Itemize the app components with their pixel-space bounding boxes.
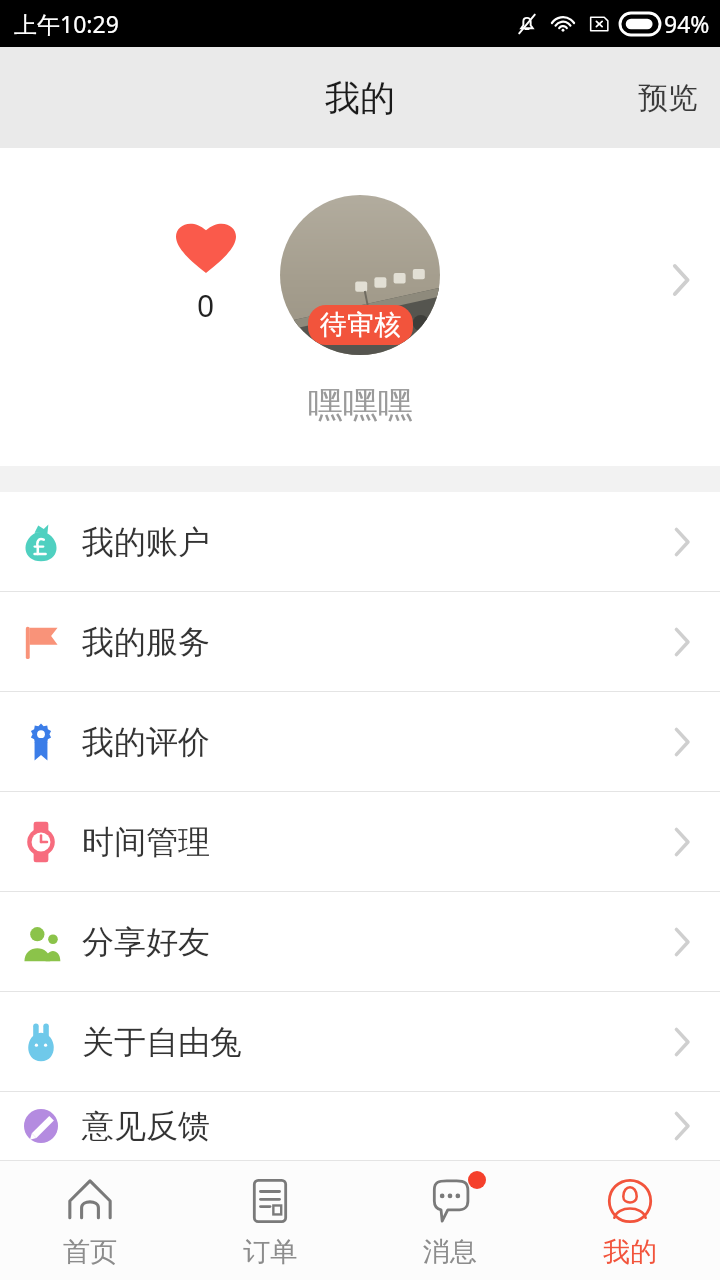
button[interactable]: 我的评价: [0, 692, 720, 791]
staticText: 时间管理: [82, 822, 672, 862]
staticText: 首页: [63, 1235, 117, 1269]
staticText: 我的账户: [82, 522, 672, 562]
button[interactable]: 我的服务: [0, 592, 720, 691]
button[interactable]: 0: [0, 148, 720, 466]
staticText: 我的服务: [82, 622, 672, 662]
staticText: 预览: [638, 79, 698, 117]
button[interactable]: 分享好友: [0, 892, 720, 991]
button[interactable]: 消息: [360, 1161, 540, 1280]
button[interactable]: 预览: [616, 61, 720, 135]
button[interactable]: 我的账户: [0, 492, 720, 591]
button[interactable]: 订单: [180, 1161, 360, 1280]
staticText: 我的: [325, 76, 395, 120]
button[interactable]: 我的: [540, 1161, 720, 1280]
button[interactable]: 关于自由兔: [0, 992, 720, 1091]
staticText: 嘿嘿嘿: [308, 383, 413, 427]
button[interactable]: 意见反馈: [0, 1092, 720, 1160]
staticText: 94%: [664, 8, 710, 39]
button[interactable]: 时间管理: [0, 792, 720, 891]
staticText: 消息: [423, 1235, 477, 1269]
staticText: 我的: [603, 1235, 657, 1269]
staticText: 意见反馈: [82, 1106, 672, 1146]
button[interactable]: 首页: [0, 1161, 180, 1280]
staticText: 分享好友: [82, 922, 672, 962]
staticText: 上午10:29: [14, 8, 119, 39]
staticText: 0: [197, 285, 215, 326]
staticText: 待审核: [320, 308, 401, 342]
staticText: 关于自由兔: [82, 1022, 672, 1062]
staticText: 订单: [243, 1235, 297, 1269]
staticText: 我的评价: [82, 722, 672, 762]
